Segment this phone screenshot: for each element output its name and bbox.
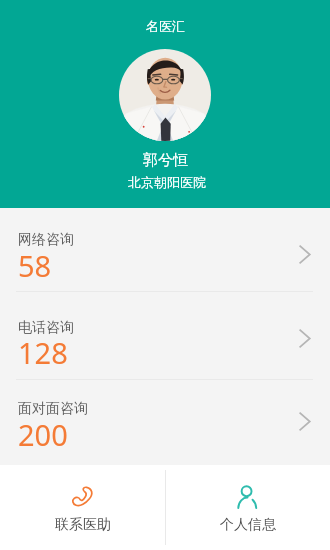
staticText: 个人信息	[220, 516, 276, 534]
staticText: 郭兮恒	[143, 151, 188, 170]
other: 联系医助	[71, 485, 94, 508]
staticText: 200	[18, 415, 68, 454]
staticText: 面对面咨询	[18, 400, 88, 418]
staticText: 128	[18, 333, 68, 372]
staticText: 名医汇	[146, 18, 185, 34]
other: 个人信息	[236, 485, 259, 508]
staticText: 联系医助	[55, 516, 111, 534]
button[interactable]: 面对面咨询	[0, 380, 330, 465]
button[interactable]: 网络咨询	[0, 208, 330, 291]
button[interactable]: 个人信息	[165, 465, 330, 550]
button[interactable]: 电话咨询	[0, 292, 330, 379]
staticText: 网络咨询	[18, 231, 74, 249]
staticText: 58	[18, 246, 52, 285]
button[interactable]: 联系医助	[0, 465, 165, 550]
staticText: 电话咨询	[18, 319, 74, 337]
staticText: 北京朝阳医院	[128, 174, 206, 190]
